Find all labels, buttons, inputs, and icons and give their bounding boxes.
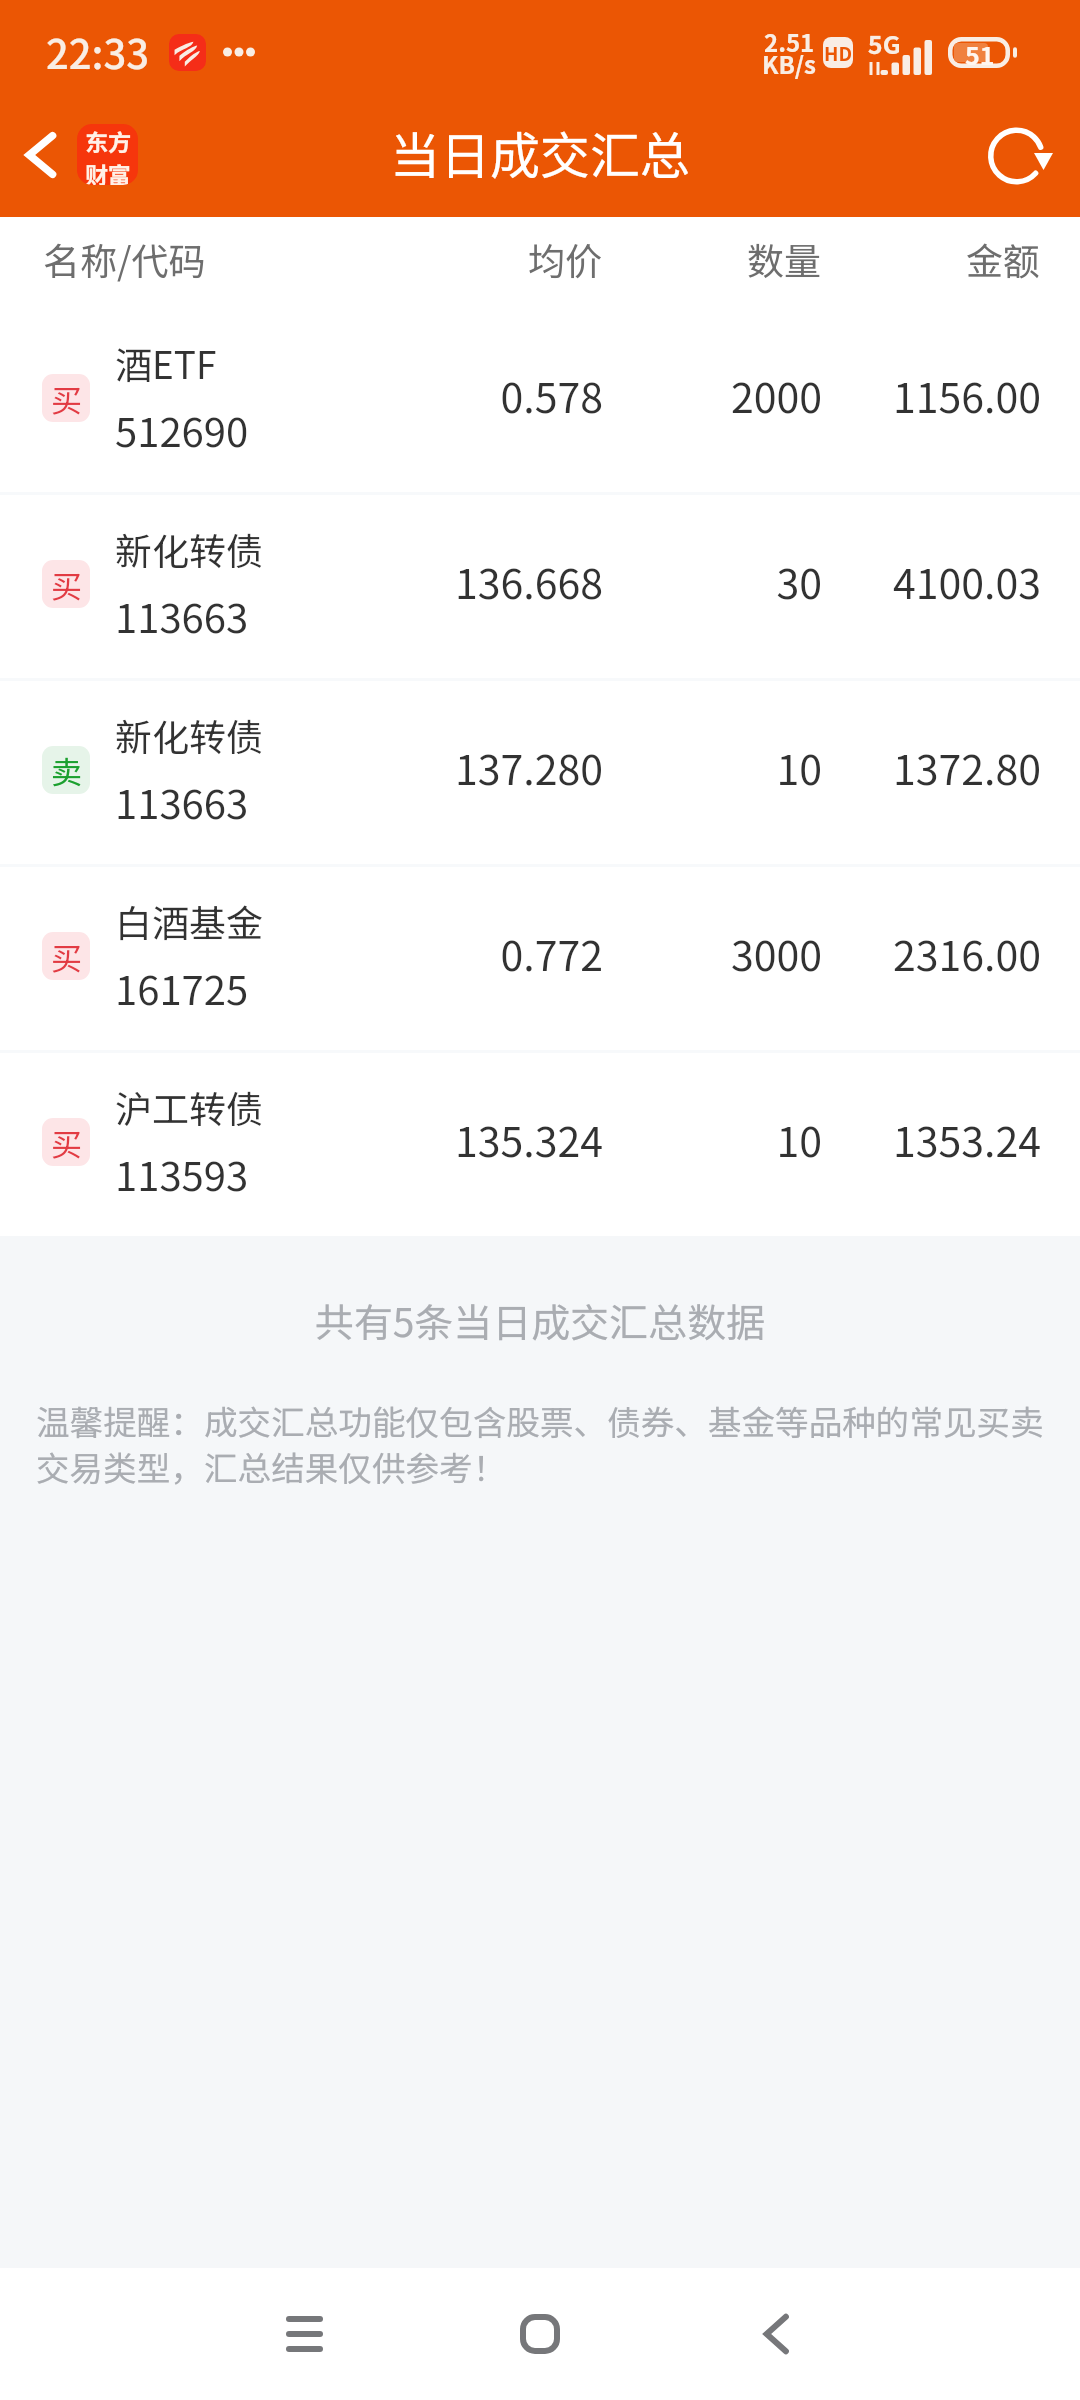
button[interactable]: Back [0,110,152,207]
staticText: 东方 [85,124,131,157]
staticText: 新化转债 [115,708,263,762]
button[interactable]: 买 [0,867,1080,1050]
staticText: 白酒基金 [115,894,263,948]
staticText: 买 [51,376,82,421]
button[interactable]: Recent apps [234,2268,374,2400]
staticText: 沪工转债 [115,1080,263,1134]
staticText: 财富 [85,157,131,185]
button[interactable]: Home [470,2268,610,2400]
staticText: 当日成交汇总 [390,116,690,188]
button[interactable]: Refresh [968,108,1080,208]
staticText: 161725 [115,959,249,1017]
staticText: KB/s [762,46,816,81]
staticText: 名称/代码 [43,232,206,286]
staticText: 1156.00 [822,365,1041,424]
staticText: 金额 [821,232,1040,286]
staticText: 卖 [51,748,82,793]
button[interactable]: 卖 [0,681,1080,864]
staticText: 酒ETF [115,336,217,390]
staticText: 135.324 [383,1109,603,1168]
staticText: 5G [868,25,901,61]
staticText: 10 [603,737,822,796]
staticText: 2.51 [764,24,815,59]
staticText: 51 [965,36,995,67]
staticText: 113663 [115,773,249,831]
button[interactable]: 买 [0,1053,1080,1236]
button[interactable]: 买 [0,495,1080,678]
staticText: 数量 [602,232,821,286]
staticText: 买 [51,1120,82,1165]
staticText: 温馨提醒：成交汇总功能仅包含股票、债券、基金等品种的常见买卖交易类型，汇总结果仅… [36,1396,1047,1491]
staticText: 0.578 [383,365,603,424]
staticText: 113663 [115,587,249,645]
staticText: HD [824,39,852,67]
button[interactable]: Back [706,2268,846,2400]
staticText: 均价 [432,232,602,286]
staticText: 136.668 [383,551,603,610]
staticText: 1353.24 [822,1109,1041,1168]
staticText: 3000 [603,923,822,982]
staticText: 4100.03 [822,551,1041,610]
staticText: 买 [51,934,82,979]
staticText: 新化转债 [115,522,263,576]
staticText: 10 [603,1109,822,1168]
staticText: 0.772 [383,923,603,982]
staticText: 137.280 [383,737,603,796]
staticText: 买 [51,562,82,607]
staticText: 113593 [115,1145,249,1203]
staticText: 1372.80 [822,737,1041,796]
staticText: 共有5条当日成交汇总数据 [0,1292,1080,1348]
staticText: 22:33 [46,23,150,81]
staticText: 512690 [115,401,249,459]
staticText: 2000 [603,365,822,424]
staticText: 30 [603,551,822,610]
button[interactable]: 买 [0,309,1080,492]
staticText: 2316.00 [822,923,1041,982]
